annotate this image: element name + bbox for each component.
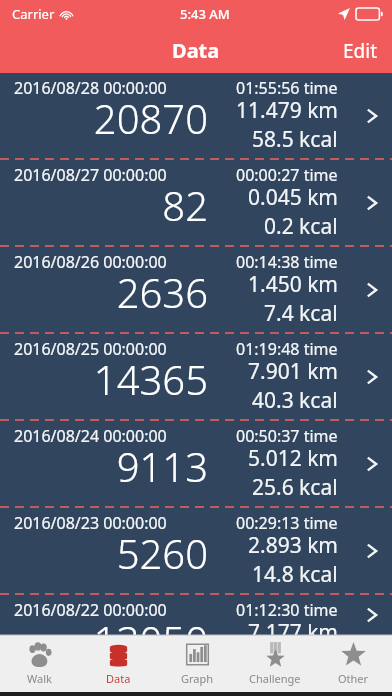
other: Details [366,106,378,126]
button[interactable]: 2016/08/23 00:00:00 [0,508,392,593]
button[interactable]: 2016/08/26 00:00:00 [0,247,392,332]
staticText: 13050 [93,613,208,635]
staticText: 00:14:38 time [236,251,338,273]
staticText: Data [172,37,220,64]
staticText: 01:19:48 time [236,338,338,360]
staticText: Other [338,671,369,686]
staticText: 7.901 km [248,357,338,386]
staticText: 7.4 kcal [264,299,338,328]
other: Details [366,454,378,474]
button[interactable]: 2016/08/25 00:00:00 [0,334,392,419]
other: Details [366,605,378,625]
staticText: 5.012 km [248,444,338,473]
staticText: Challenge [249,671,301,686]
staticText: 82 [162,178,208,232]
staticText: 2016/08/27 00:00:00 [14,164,167,186]
button[interactable]: Walk [0,635,79,692]
other: Details [366,541,378,561]
staticText: 5260 [116,526,208,580]
staticText: 14365 [93,352,208,406]
staticText: Walk [27,671,52,686]
staticText: 2016/08/23 00:00:00 [14,512,167,534]
other: Details [366,367,378,387]
button[interactable]: 2016/08/27 00:00:00 [0,160,392,245]
staticText: 58.5 kcal [252,125,338,154]
staticText: 40.3 kcal [252,386,338,415]
staticText: 2636 [116,265,208,319]
button[interactable]: Other [314,635,392,692]
staticText: 00:00:27 time [236,164,338,186]
staticText: 2.893 km [248,531,338,560]
staticText: 25.6 kcal [252,473,338,502]
staticText: 2016/08/25 00:00:00 [14,338,167,360]
staticText: 5:43 AM [180,5,230,23]
staticText: 00:29:13 time [236,512,338,534]
button[interactable]: Challenge [236,635,314,692]
staticText: 00:50:37 time [236,425,338,447]
other: Details [366,193,378,213]
staticText: 11.479 km [236,96,338,125]
button[interactable]: 2016/08/28 00:00:00 [0,73,392,158]
staticText: Data [106,671,131,686]
button[interactable]: 2016/08/22 00:00:00 [0,595,392,635]
staticText: 2016/08/22 00:00:00 [14,599,167,621]
staticText: 0.2 kcal [264,212,338,241]
staticText: 01:12:30 time [236,599,338,621]
staticText: 2016/08/24 00:00:00 [14,425,167,447]
staticText: 1.450 km [248,270,338,299]
button[interactable]: Edit [329,30,392,72]
staticText: Graph [181,671,214,686]
button[interactable]: Graph [158,635,236,692]
staticText: 0.045 km [248,183,338,212]
button[interactable]: Data [79,635,158,692]
staticText: 20870 [93,91,208,145]
button[interactable]: 2016/08/24 00:00:00 [0,421,392,506]
staticText: 9113 [116,439,208,493]
staticText: Carrier [12,5,55,23]
staticText: 01:55:56 time [236,77,338,99]
other: Details [366,280,378,300]
staticText: 14.8 kcal [252,560,338,589]
staticText: 2016/08/28 00:00:00 [14,77,167,99]
staticText: 7.177 km [248,618,338,635]
staticText: 2016/08/26 00:00:00 [14,251,167,273]
staticText: Edit [343,38,378,64]
